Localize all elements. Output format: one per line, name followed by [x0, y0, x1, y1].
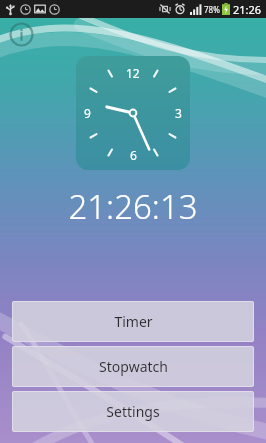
staticText: 3 [175, 105, 182, 121]
staticText: 21:26:13 [0, 184, 266, 229]
staticText: 12 [126, 65, 140, 81]
staticText: Settings [106, 402, 160, 421]
staticText: 9 [84, 105, 91, 121]
button[interactable]: About [9, 22, 34, 47]
button[interactable]: Settings [12, 391, 254, 432]
button[interactable]: Analog clock [76, 56, 190, 170]
staticText: 6 [130, 147, 137, 163]
staticText: Timer [114, 312, 153, 331]
button[interactable]: Stopwatch [12, 346, 254, 387]
staticText: Stopwatch [99, 357, 168, 376]
staticText: 78% [204, 4, 220, 15]
staticText: 21:26 [233, 2, 262, 17]
button[interactable]: Timer [12, 301, 254, 342]
